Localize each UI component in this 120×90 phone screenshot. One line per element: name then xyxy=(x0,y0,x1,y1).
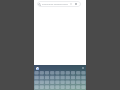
staticText: online team members work xyxy=(42,3,68,6)
button[interactable]: online team members work xyxy=(37,1,81,7)
button[interactable]: Google Assistant xyxy=(36,67,39,70)
